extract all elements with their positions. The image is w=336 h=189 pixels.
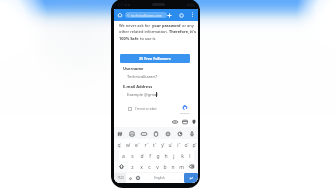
- staticText: Therefore, it's: [169, 29, 196, 34]
- button[interactable]: Shift: [114, 161, 128, 172]
- button[interactable]: English: [142, 173, 176, 183]
- button[interactable]: Addresses: [191, 119, 197, 125]
- button[interactable]: Clipboard: [153, 131, 159, 137]
- staticText: 2: [129, 141, 131, 144]
- staticText: j: [173, 153, 175, 160]
- button[interactable]: m: [177, 161, 185, 172]
- button[interactable]: technicalkaran.com: [125, 12, 167, 18]
- button[interactable]: l: [186, 150, 194, 161]
- staticText: p: [192, 142, 196, 149]
- staticText: reCAPTCHA: [180, 112, 190, 114]
- staticText: d: [140, 153, 144, 160]
- button[interactable]: n: [169, 161, 177, 172]
- staticText: u: [168, 142, 172, 149]
- button[interactable]: 8: [174, 139, 182, 150]
- button[interactable]: b: [161, 161, 169, 172]
- staticText: 4: [147, 141, 149, 144]
- button[interactable]: GIF: [141, 131, 147, 137]
- staticText: E-mail Address: [123, 84, 153, 89]
- button[interactable]: Stickers: [129, 131, 135, 137]
- button[interactable]: Home: [117, 12, 123, 18]
- button[interactable]: Settings: [165, 131, 171, 137]
- staticText: 9: [187, 141, 189, 144]
- staticText: 6: [163, 141, 165, 144]
- staticText: 4:31: [118, 3, 124, 7]
- staticText: s: [131, 153, 134, 160]
- button[interactable]: 9: [182, 139, 190, 150]
- staticText: 5: [155, 141, 157, 144]
- button[interactable]: New tab: [166, 12, 172, 18]
- staticText: We never ask for: [119, 23, 152, 28]
- button[interactable]: Keyboard layouts: [117, 131, 123, 137]
- button[interactable]: ?123: [114, 173, 126, 183]
- button[interactable]: h: [162, 150, 170, 161]
- button[interactable]: 25 Free Followers: [120, 54, 190, 63]
- button[interactable]: v: [153, 161, 161, 172]
- button[interactable]: k: [178, 150, 186, 161]
- staticText: l: [189, 153, 191, 160]
- button[interactable]: Voice input: [189, 131, 195, 137]
- staticText: q: [117, 142, 121, 149]
- staticText: w: [126, 142, 130, 149]
- button[interactable]: More options: [190, 12, 195, 17]
- staticText: Example @gmail: [127, 92, 159, 97]
- button[interactable]: 7: [166, 139, 174, 150]
- button[interactable]: x: [137, 161, 145, 172]
- staticText: to use it.: [140, 36, 157, 41]
- button[interactable]: 5: [150, 139, 158, 150]
- staticText: 25 Free Followers: [139, 56, 171, 61]
- button[interactable]: j: [170, 150, 178, 161]
- button[interactable]: 1: [114, 139, 123, 150]
- staticText: .: [179, 176, 181, 181]
- staticText: i: [177, 142, 179, 149]
- staticText: other related information.: [119, 29, 169, 34]
- staticText: b: [163, 164, 167, 171]
- staticText: technicalkaran.com: [131, 13, 163, 18]
- staticText: e: [135, 142, 138, 149]
- button[interactable]: 2: [123, 139, 132, 150]
- button[interactable]: 3: [132, 139, 141, 150]
- button[interactable]: 4: [141, 139, 150, 150]
- staticText: o: [184, 142, 188, 149]
- button[interactable]: z: [128, 161, 137, 172]
- button[interactable]: Enter: [184, 173, 198, 183]
- staticText: z: [131, 164, 134, 171]
- staticText: r: [144, 142, 147, 149]
- staticText: 8: [179, 141, 181, 144]
- staticText: your password: [152, 23, 181, 28]
- staticText: 0: [195, 141, 197, 144]
- button[interactable]: g: [154, 150, 162, 161]
- staticText: k: [181, 153, 184, 160]
- staticText: Username: [123, 66, 144, 71]
- staticText: English: [154, 176, 165, 180]
- button[interactable]: Emoji: [134, 173, 142, 183]
- button[interactable]: 0: [190, 139, 198, 150]
- staticText: n: [171, 164, 175, 171]
- staticText: g: [156, 153, 160, 160]
- button[interactable]: s: [128, 150, 137, 161]
- staticText: I'm not a robot: [135, 107, 157, 111]
- button[interactable]: Tabs: [178, 12, 184, 18]
- button[interactable]: d: [137, 150, 146, 161]
- staticText: f: [149, 153, 151, 160]
- button[interactable]: c: [145, 161, 153, 172]
- button[interactable]: a: [119, 150, 128, 161]
- button[interactable]: Comma: [126, 173, 134, 183]
- staticText: t: [153, 142, 155, 149]
- staticText: 7: [171, 141, 173, 144]
- staticText: ?123: [117, 176, 124, 180]
- button[interactable]: Payment methods: [182, 119, 188, 125]
- button[interactable]: Themes: [177, 131, 183, 137]
- staticText: 100% Safe: [119, 36, 140, 41]
- button[interactable]: [128, 107, 132, 111]
- staticText: c: [148, 164, 151, 171]
- staticText: h: [164, 153, 168, 160]
- staticText: Technicalkaran7: [127, 74, 158, 79]
- button[interactable]: 6: [158, 139, 166, 150]
- staticText: v: [156, 164, 159, 171]
- button[interactable]: f: [146, 150, 154, 161]
- staticText: 1: [120, 141, 122, 144]
- button[interactable]: Saved passwords: [172, 119, 178, 125]
- button[interactable]: Backspace: [185, 161, 198, 172]
